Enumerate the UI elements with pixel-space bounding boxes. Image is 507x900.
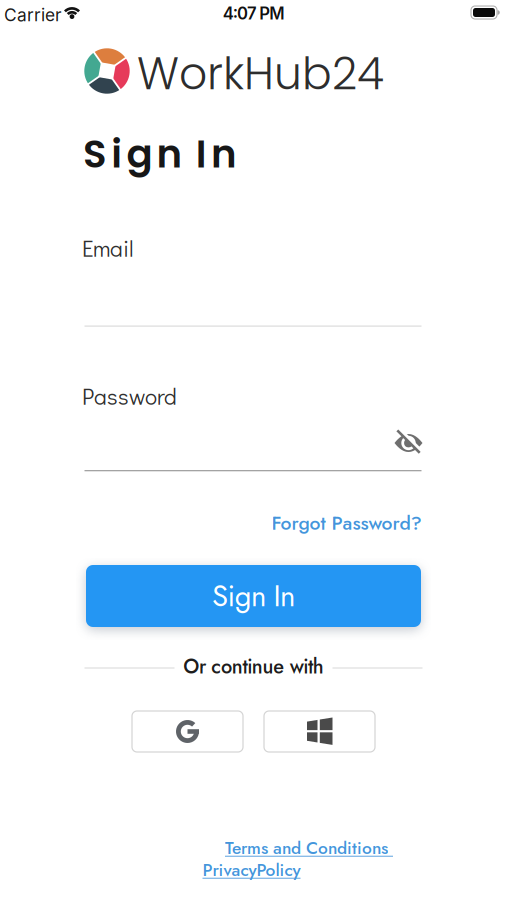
staticText: PrivacyPolicy bbox=[202, 857, 300, 882]
staticText: Email bbox=[82, 233, 134, 263]
staticText: Terms and Conditions bbox=[225, 835, 393, 860]
button[interactable] bbox=[132, 711, 243, 752]
staticText: Carrier bbox=[4, 4, 62, 25]
button[interactable]: Sign In bbox=[86, 565, 421, 627]
staticText: 4:07 PM bbox=[223, 3, 284, 24]
button[interactable] bbox=[264, 711, 375, 752]
staticText: I bbox=[196, 127, 207, 181]
staticText: n bbox=[157, 127, 183, 181]
button[interactable]: Forgot Password? bbox=[271, 509, 421, 537]
staticText: g bbox=[126, 127, 152, 181]
staticText: i bbox=[111, 127, 122, 181]
staticText: Forgot Password? bbox=[271, 509, 421, 537]
staticText: WorkHub24 bbox=[137, 43, 384, 105]
button[interactable]: PrivacyPolicy bbox=[202, 857, 300, 882]
button[interactable]: Terms and Conditions bbox=[225, 835, 393, 860]
staticText: Or continue with bbox=[183, 652, 324, 681]
staticText: S bbox=[83, 127, 107, 181]
staticText: Sign In bbox=[212, 575, 295, 617]
staticText: n bbox=[211, 127, 237, 181]
staticText: Password bbox=[82, 381, 177, 411]
button[interactable] bbox=[390, 426, 426, 460]
